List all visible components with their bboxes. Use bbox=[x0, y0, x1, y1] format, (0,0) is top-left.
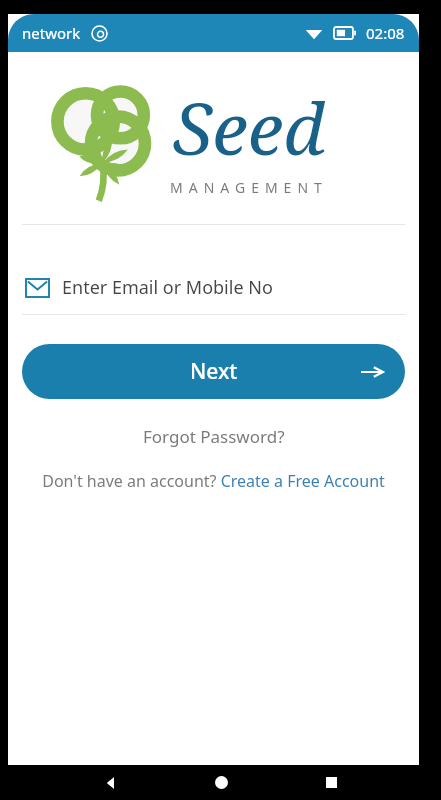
staticText: Enter Email or Mobile No bbox=[62, 275, 273, 300]
staticText: Next bbox=[190, 357, 238, 386]
button[interactable]: Next bbox=[22, 344, 405, 399]
button[interactable]: Recent apps bbox=[276, 765, 386, 800]
button[interactable]: Forgot Password? bbox=[131, 421, 297, 452]
staticText: Forgot Password? bbox=[143, 425, 285, 448]
staticText: network bbox=[22, 23, 81, 43]
button[interactable]: Home bbox=[166, 765, 276, 800]
staticText: Don't have an account? Create a Free Acc… bbox=[42, 470, 385, 492]
button[interactable]: Back bbox=[56, 765, 166, 800]
staticText: Seed bbox=[173, 78, 325, 176]
button[interactable]: Enter Email or Mobile No bbox=[22, 275, 405, 315]
staticText: MANAGEMENT bbox=[170, 178, 328, 197]
staticText: 02:08 bbox=[366, 23, 405, 43]
button[interactable]: Don't have an account? Create a Free Acc… bbox=[30, 466, 397, 496]
